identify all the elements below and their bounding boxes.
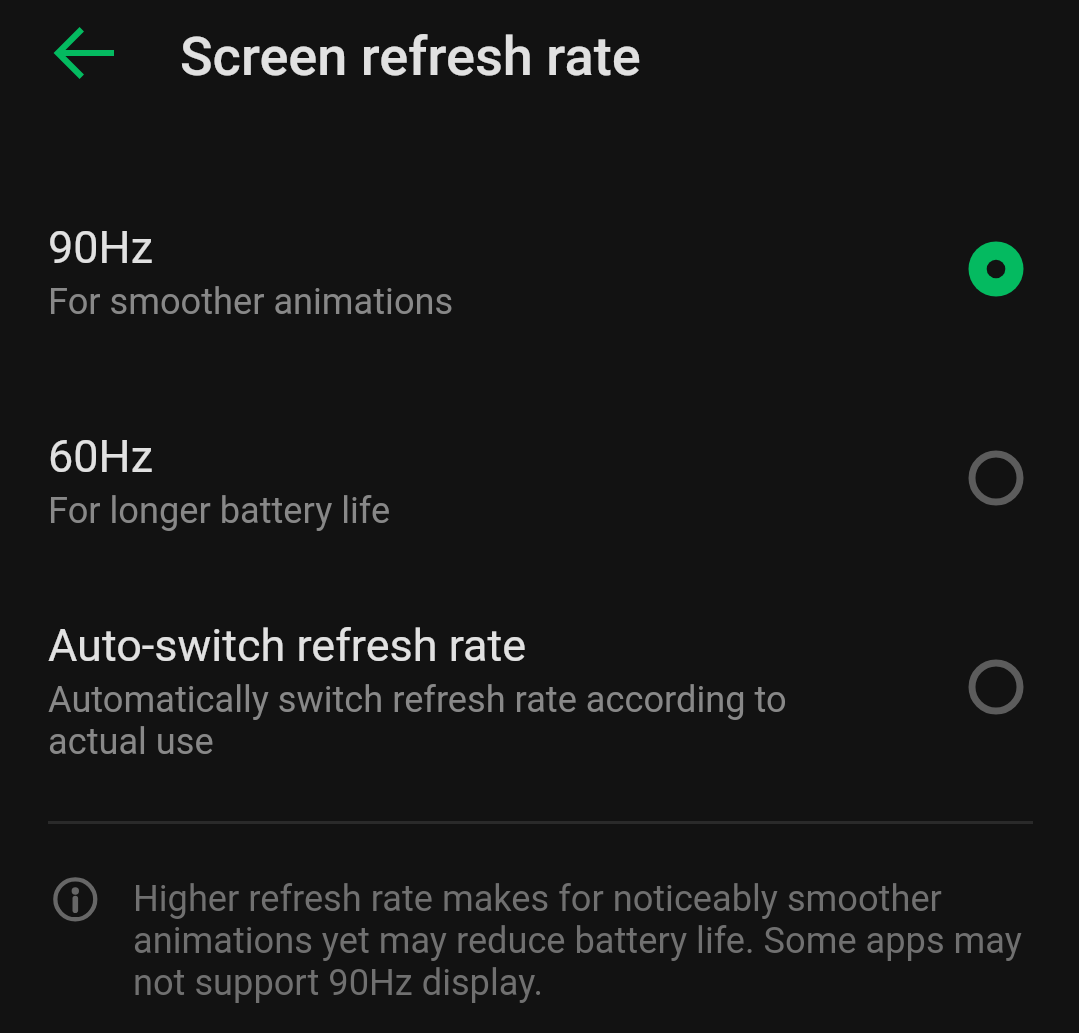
button[interactable]: 90Hz <box>0 192 1079 340</box>
staticText: 60Hz <box>48 430 154 483</box>
staticText: Higher refresh rate makes for noticeably… <box>133 878 1033 1004</box>
staticText: For longer battery life <box>48 490 948 532</box>
staticText: Auto-switch refresh rate <box>48 619 527 672</box>
staticText: Screen refresh rate <box>180 25 641 88</box>
other: Information <box>51 875 100 924</box>
staticText: For smoother animations <box>48 281 948 323</box>
button[interactable]: Navigate up <box>14 11 98 95</box>
button[interactable]: Auto-switch refresh rate <box>0 590 1079 782</box>
staticText: Automatically switch refresh rate accord… <box>48 679 838 763</box>
staticText: 90Hz <box>48 221 154 274</box>
button[interactable]: 60Hz <box>0 401 1079 549</box>
